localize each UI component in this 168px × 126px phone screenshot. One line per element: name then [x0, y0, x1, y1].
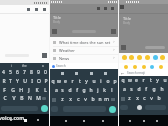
button[interactable]: d [135, 86, 142, 93]
button[interactable]: a [53, 87, 59, 94]
button[interactable]: Emoji [129, 55, 134, 60]
button[interactable]: o [104, 78, 111, 85]
button[interactable]: x [133, 95, 141, 102]
button[interactable]: 8 [28, 69, 35, 76]
button[interactable]: f [142, 86, 150, 93]
button[interactable]: f [73, 87, 80, 94]
button[interactable]: p [111, 78, 118, 85]
button[interactable]: M [34, 95, 42, 102]
button[interactable]: F [0, 87, 9, 94]
button[interactable]: Emoji key [137, 105, 142, 110]
button[interactable]: V [9, 95, 18, 102]
button[interactable]: b [89, 96, 96, 103]
button[interactable]: Navigation [63, 118, 69, 124]
button[interactable]: Navigation [141, 118, 147, 124]
button[interactable]: K [33, 87, 41, 94]
button[interactable]: Tool [74, 71, 79, 76]
button[interactable]: e [133, 77, 140, 84]
button[interactable]: k [101, 87, 108, 94]
button[interactable]: U [21, 78, 28, 85]
button[interactable]: 4 [0, 69, 7, 76]
button[interactable]: G [9, 87, 17, 94]
button[interactable]: Navigation [100, 118, 106, 124]
button[interactable]: Emoji [160, 55, 165, 60]
button[interactable]: B [18, 95, 26, 102]
button[interactable]: Emoji [153, 55, 158, 60]
button[interactable]: c [74, 96, 82, 103]
button[interactable]: l [108, 87, 115, 94]
button[interactable]: g [150, 86, 158, 93]
button[interactable]: Emoji [142, 65, 146, 69]
button[interactable]: m [103, 96, 110, 103]
button[interactable]: x [66, 96, 74, 103]
button[interactable]: Emoji [137, 55, 142, 60]
button[interactable]: q [50, 78, 56, 85]
button[interactable]: Tool [60, 71, 65, 76]
button[interactable]: R [0, 78, 7, 85]
button[interactable]: z [58, 96, 66, 103]
button[interactable]: j [94, 87, 101, 94]
button[interactable]: T [7, 78, 14, 85]
button[interactable]: L [41, 87, 49, 94]
button[interactable]: 0 [42, 69, 49, 76]
button[interactable]: Action [34, 7, 38, 11]
button[interactable]: Tool [89, 71, 94, 76]
button[interactable]: s [128, 86, 135, 93]
button[interactable]: J [25, 87, 33, 94]
button[interactable]: Y [14, 78, 21, 85]
button[interactable]: Tool [103, 71, 108, 76]
button[interactable]: Action [26, 7, 30, 11]
button[interactable]: s [59, 87, 66, 94]
button[interactable]: Symbols [120, 105, 128, 110]
button[interactable]: News [50, 54, 118, 62]
button[interactable]: i [97, 78, 104, 85]
button[interactable]: Emoji [159, 65, 163, 69]
button[interactable]: b [155, 95, 162, 102]
button[interactable]: Emoji [133, 65, 137, 69]
button[interactable]: t [147, 77, 154, 84]
button[interactable]: I [28, 78, 35, 85]
button[interactable]: Navigation [81, 118, 87, 124]
button[interactable]: Navigation [127, 118, 133, 124]
button[interactable]: u [161, 77, 168, 84]
button[interactable]: y [154, 77, 161, 84]
button[interactable]: Navigation [35, 117, 41, 123]
button[interactable]: g [80, 87, 87, 94]
button[interactable]: v [82, 96, 89, 103]
button[interactable]: r [140, 77, 147, 84]
button[interactable]: Emoji [122, 55, 127, 60]
button[interactable]: What time does the sun set [50, 38, 118, 46]
button[interactable]: u [90, 78, 97, 85]
button[interactable]: Navigation [154, 118, 160, 124]
button[interactable]: Emoji [150, 65, 154, 69]
button[interactable]: v [148, 95, 155, 102]
button[interactable]: H [17, 87, 25, 94]
button[interactable]: t [76, 78, 83, 85]
button[interactable]: Backspace [42, 97, 46, 100]
button[interactable]: Action [42, 7, 46, 11]
button[interactable]: a [121, 86, 128, 93]
button[interactable]: Navigation [8, 117, 14, 123]
button[interactable]: h [87, 87, 94, 94]
button[interactable]: w [126, 77, 133, 84]
button[interactable]: O [35, 78, 42, 85]
button[interactable]: C [0, 95, 9, 102]
button[interactable]: 5 [7, 69, 14, 76]
button[interactable]: 6 [14, 69, 21, 76]
button[interactable]: n [96, 96, 103, 103]
button[interactable]: P [42, 78, 49, 85]
button[interactable]: Symbols [51, 106, 58, 112]
button[interactable]: Voice input [41, 105, 48, 112]
button[interactable]: Voice input [109, 106, 116, 113]
button[interactable]: h [158, 86, 166, 93]
